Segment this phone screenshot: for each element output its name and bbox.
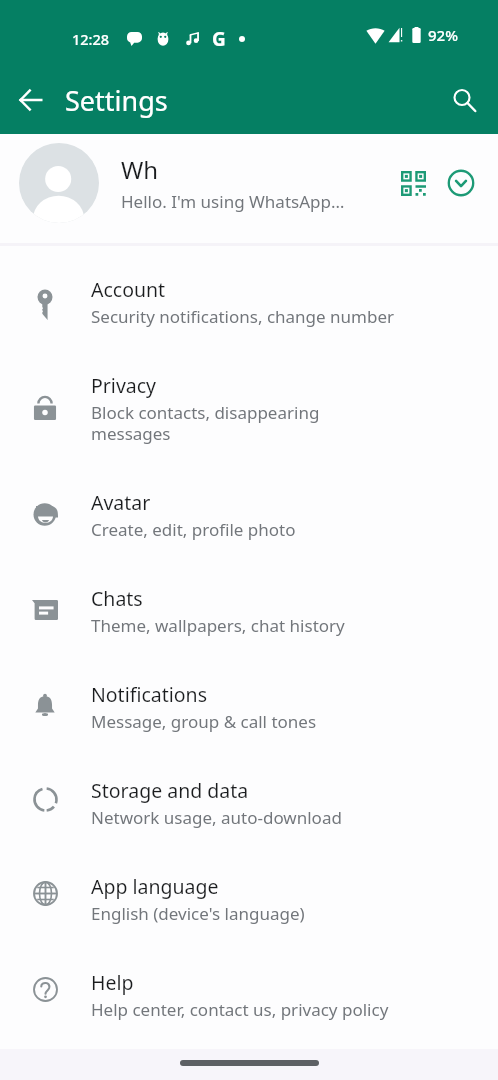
- button[interactable]: Help: [0, 947, 498, 1043]
- button[interactable]: Notifications: [0, 659, 498, 755]
- staticText: Wh: [121, 153, 159, 186]
- staticText: Create, edit, profile photo: [91, 518, 296, 541]
- button[interactable]: Account: [0, 254, 498, 350]
- staticText: App language: [91, 873, 219, 900]
- staticText: Settings: [65, 82, 168, 119]
- button[interactable]: Search: [440, 76, 488, 124]
- staticText: Privacy: [91, 372, 157, 399]
- button[interactable]: Avatar: [0, 467, 498, 563]
- staticText: Message, group & call tones: [91, 710, 317, 733]
- staticText: Help: [91, 969, 134, 996]
- staticText: Chats: [91, 585, 143, 612]
- button[interactable]: QR code: [391, 161, 435, 205]
- staticText: Notifications: [91, 681, 207, 708]
- staticText: Account: [91, 276, 166, 303]
- staticText: English (device's language): [91, 902, 305, 925]
- staticText: Help center, contact us, privacy policy: [91, 998, 389, 1021]
- staticText: Avatar: [91, 489, 151, 516]
- staticText: Storage and data: [91, 777, 249, 804]
- staticText: 92%: [428, 25, 458, 45]
- staticText: Network usage, auto-download: [91, 806, 342, 829]
- button[interactable]: Privacy: [0, 350, 498, 467]
- button[interactable]: Wh: [0, 134, 498, 232]
- staticText: Block contacts, disappearing messages: [91, 401, 401, 445]
- button[interactable]: App language: [0, 851, 498, 947]
- button[interactable]: Back: [7, 76, 55, 124]
- button[interactable]: Expand profile: [439, 161, 483, 205]
- staticText: Hello. I'm using WhatsApp…: [121, 190, 345, 213]
- staticText: Theme, wallpapers, chat history: [91, 614, 345, 637]
- button[interactable]: Storage and data: [0, 755, 498, 851]
- staticText: Security notifications, change number: [91, 305, 395, 328]
- staticText: G: [212, 26, 226, 52]
- staticText: 12:28: [72, 29, 110, 49]
- button[interactable]: Chats: [0, 563, 498, 659]
